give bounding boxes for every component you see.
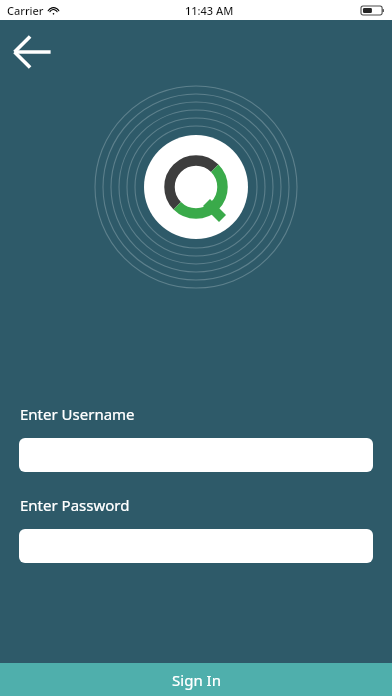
button[interactable] [19,529,373,563]
button[interactable]: Sign In [0,663,392,696]
button[interactable] [19,438,373,472]
staticText: Enter Username [20,404,135,424]
staticText: Enter Password [20,495,130,515]
button[interactable]: Back [6,26,58,78]
staticText: Sign In [172,670,221,690]
staticText: 11:43 AM [185,3,234,18]
staticText: Carrier [7,3,44,18]
